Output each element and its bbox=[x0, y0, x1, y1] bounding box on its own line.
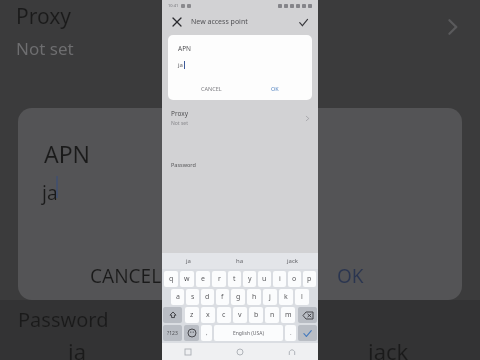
button[interactable]: m bbox=[281, 307, 295, 323]
staticText: u bbox=[262, 274, 267, 284]
staticText: ja bbox=[42, 180, 58, 206]
staticText: y bbox=[248, 274, 252, 284]
staticText: d bbox=[205, 292, 210, 302]
button[interactable]: Back bbox=[266, 343, 318, 360]
button[interactable]: e bbox=[196, 271, 210, 287]
staticText: c bbox=[222, 310, 226, 320]
button[interactable]: Recent apps bbox=[162, 343, 214, 360]
button[interactable]: l bbox=[295, 289, 309, 305]
staticText: a bbox=[176, 292, 180, 302]
staticText: APN bbox=[178, 44, 192, 53]
staticText: o bbox=[292, 274, 297, 284]
staticText: CANCEL bbox=[90, 263, 162, 289]
button[interactable]: h bbox=[247, 289, 261, 305]
button[interactable]: b bbox=[249, 307, 263, 323]
staticText: ja bbox=[186, 257, 191, 265]
button[interactable]: w bbox=[180, 271, 194, 287]
staticText: CANCEL bbox=[201, 85, 222, 92]
button[interactable]: Enter bbox=[298, 325, 317, 341]
staticText: v bbox=[238, 310, 242, 320]
staticText: r bbox=[218, 274, 221, 284]
staticText: ja bbox=[68, 336, 87, 360]
button[interactable]: u bbox=[258, 271, 271, 287]
button[interactable]: Proxy bbox=[162, 101, 318, 135]
button[interactable]: CANCEL bbox=[196, 83, 227, 94]
staticText: z bbox=[190, 310, 194, 320]
button[interactable]: OK bbox=[266, 83, 284, 94]
staticText: g bbox=[236, 292, 241, 302]
button[interactable]: a bbox=[171, 289, 184, 305]
button[interactable]: ?123 bbox=[163, 325, 182, 341]
button[interactable]: g bbox=[231, 289, 245, 305]
staticText: Proxy bbox=[171, 109, 189, 118]
staticText: f bbox=[221, 292, 224, 302]
staticText: e bbox=[201, 274, 205, 284]
button[interactable]: ja bbox=[162, 253, 214, 269]
button[interactable]: t bbox=[228, 271, 241, 287]
button[interactable]: v bbox=[233, 307, 247, 323]
button[interactable]: Shift bbox=[163, 307, 182, 323]
button[interactable]: o bbox=[288, 271, 301, 287]
staticText: Password bbox=[18, 306, 109, 333]
staticText: 10:41 bbox=[168, 3, 179, 8]
staticText: Password bbox=[171, 161, 196, 168]
button[interactable]: c bbox=[217, 307, 231, 323]
staticText: x bbox=[206, 310, 210, 320]
staticText: Not set bbox=[171, 120, 188, 127]
staticText: w bbox=[184, 274, 190, 284]
staticText: APN bbox=[44, 138, 91, 169]
staticText: , bbox=[206, 329, 208, 337]
staticText: OK bbox=[271, 85, 279, 92]
button[interactable]: f bbox=[216, 289, 229, 305]
button[interactable]: APN bbox=[162, 67, 318, 101]
staticText: ja bbox=[178, 61, 183, 69]
staticText: jack bbox=[287, 257, 298, 265]
button[interactable]: d bbox=[201, 289, 214, 305]
staticText: OK bbox=[337, 263, 364, 289]
button[interactable]: ha bbox=[214, 253, 266, 269]
staticText: . bbox=[290, 329, 292, 337]
button[interactable]: q bbox=[164, 271, 178, 287]
staticText: q bbox=[169, 274, 174, 284]
button[interactable]: English (USA) bbox=[214, 325, 283, 341]
button[interactable]: r bbox=[212, 271, 226, 287]
staticText: New access point bbox=[191, 17, 248, 27]
button[interactable]: s bbox=[186, 289, 199, 305]
button[interactable]: Voice input bbox=[201, 325, 212, 341]
staticText: ?123 bbox=[167, 330, 178, 337]
staticText: j bbox=[269, 292, 271, 302]
button[interactable]: x bbox=[201, 307, 215, 323]
staticText: t bbox=[233, 274, 236, 284]
staticText: l bbox=[301, 292, 303, 302]
button[interactable]: i bbox=[273, 271, 286, 287]
staticText: p bbox=[307, 274, 312, 284]
button[interactable]: jack bbox=[266, 253, 318, 269]
staticText: h bbox=[252, 292, 257, 302]
staticText: n bbox=[270, 310, 275, 320]
staticText: i bbox=[279, 274, 281, 284]
button[interactable]: Period bbox=[285, 325, 296, 341]
staticText: Name bbox=[171, 41, 190, 50]
button[interactable]: Save bbox=[296, 15, 310, 29]
button[interactable]: y bbox=[243, 271, 256, 287]
staticText: b bbox=[254, 310, 259, 320]
staticText: s bbox=[191, 292, 195, 302]
button[interactable]: Backspace bbox=[298, 307, 317, 323]
staticText: Proxy bbox=[16, 2, 72, 31]
button[interactable]: j bbox=[263, 289, 277, 305]
button[interactable]: Name bbox=[162, 33, 318, 67]
button[interactable]: Home bbox=[214, 343, 266, 360]
button[interactable]: p bbox=[303, 271, 316, 287]
button[interactable]: z bbox=[185, 307, 199, 323]
button[interactable]: Close bbox=[170, 15, 184, 29]
button[interactable]: n bbox=[265, 307, 279, 323]
staticText: k bbox=[284, 292, 288, 302]
staticText: m bbox=[285, 310, 292, 320]
button[interactable]: Emoji bbox=[184, 325, 199, 341]
staticText: jack bbox=[368, 336, 409, 360]
button[interactable]: k bbox=[279, 289, 293, 305]
staticText: ha bbox=[236, 257, 244, 265]
